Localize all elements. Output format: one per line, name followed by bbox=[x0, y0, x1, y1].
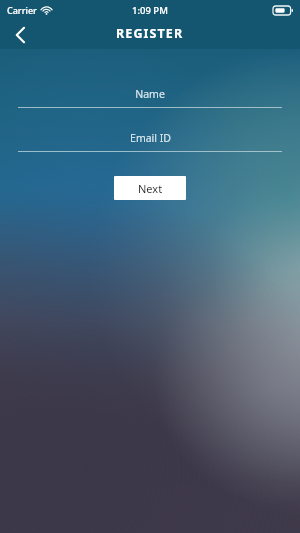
staticText: Email ID bbox=[130, 131, 171, 145]
button[interactable]: Back bbox=[0, 20, 40, 49]
staticText: Carrier bbox=[7, 4, 37, 16]
staticText: Name bbox=[135, 87, 165, 101]
button[interactable]: Name bbox=[18, 85, 282, 108]
staticText: 1:09 PM bbox=[132, 4, 168, 17]
button[interactable]: Email ID bbox=[18, 129, 282, 152]
staticText: REGISTER bbox=[116, 25, 184, 42]
button[interactable]: Next bbox=[114, 176, 186, 200]
staticText: Next bbox=[138, 181, 163, 196]
